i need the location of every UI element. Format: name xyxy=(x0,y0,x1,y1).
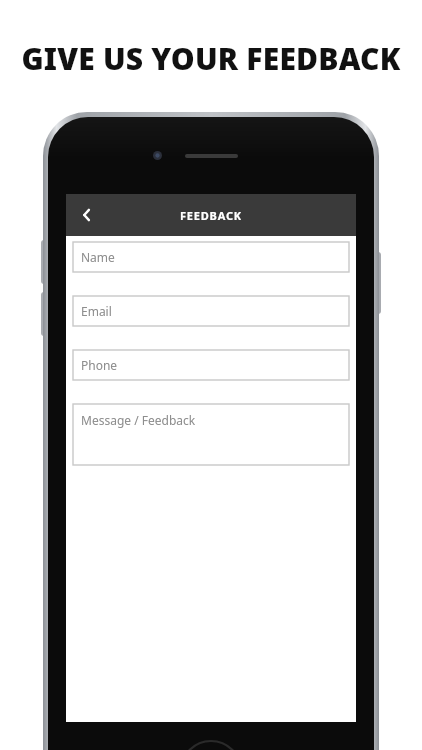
staticText: Message / Feedback xyxy=(81,412,196,428)
button[interactable]: Name xyxy=(73,242,349,272)
button[interactable]: Email xyxy=(73,296,349,326)
staticText: Name xyxy=(81,249,115,265)
staticText: Phone xyxy=(81,357,118,373)
button[interactable]: Back xyxy=(66,194,108,236)
button[interactable]: Message / Feedback xyxy=(73,404,349,465)
staticText: FEEDBACK xyxy=(180,208,242,223)
staticText: GIVE US YOUR FEEDBACK xyxy=(21,38,401,79)
button[interactable]: Phone xyxy=(73,350,349,380)
staticText: Email xyxy=(81,303,112,319)
